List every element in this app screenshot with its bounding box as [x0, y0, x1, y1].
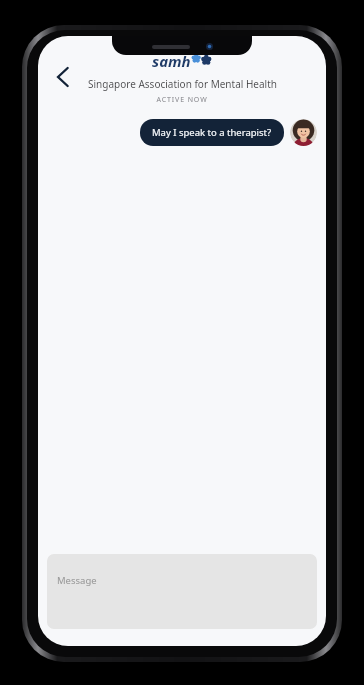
staticText: May I speak to a therapist? [152, 126, 272, 139]
staticText: ACTIVE NOW [156, 95, 208, 105]
button[interactable]: May I speak to a therapist? [140, 119, 284, 146]
staticText: samh [152, 51, 191, 71]
button[interactable]: Message [47, 554, 317, 629]
staticText: Singapore Association for Mental Health [88, 77, 277, 91]
staticText: Message [57, 574, 97, 587]
button[interactable]: SAMH logo [151, 48, 213, 72]
button[interactable]: Back [48, 62, 78, 92]
button[interactable]: Profile photo [290, 119, 317, 146]
